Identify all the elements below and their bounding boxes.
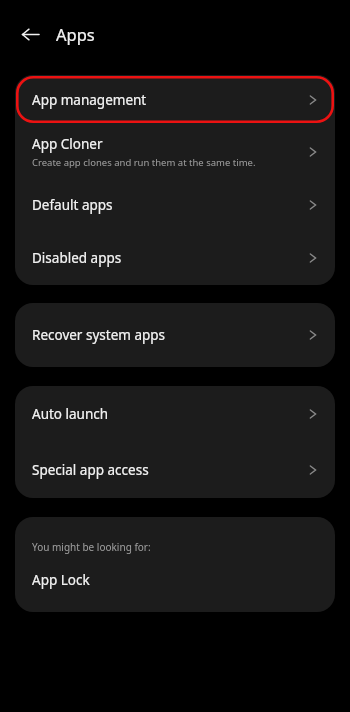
staticText: Disabled apps [32, 249, 122, 267]
staticText: App Cloner [32, 135, 103, 153]
button[interactable]: App Lock [15, 571, 335, 589]
staticText: Create app clones and run them at the sa… [32, 156, 256, 169]
button[interactable]: Disabled apps [15, 230, 335, 285]
button[interactable]: Back [13, 17, 47, 51]
button[interactable]: App management [15, 75, 335, 124]
button[interactable]: Auto launch [15, 386, 335, 442]
button[interactable]: Special app access [15, 442, 335, 498]
button[interactable]: Default apps [15, 179, 335, 230]
button[interactable]: Recover system apps [15, 303, 335, 367]
staticText: App Lock [32, 571, 90, 589]
staticText: You might be looking for: [32, 540, 151, 554]
staticText: Special app access [32, 461, 149, 479]
staticText: Auto launch [32, 405, 109, 423]
staticText: App management [32, 91, 147, 109]
staticText: Apps [56, 23, 95, 45]
button[interactable]: App Cloner [15, 124, 335, 179]
staticText: Default apps [32, 196, 113, 214]
staticText: Recover system apps [32, 326, 166, 344]
